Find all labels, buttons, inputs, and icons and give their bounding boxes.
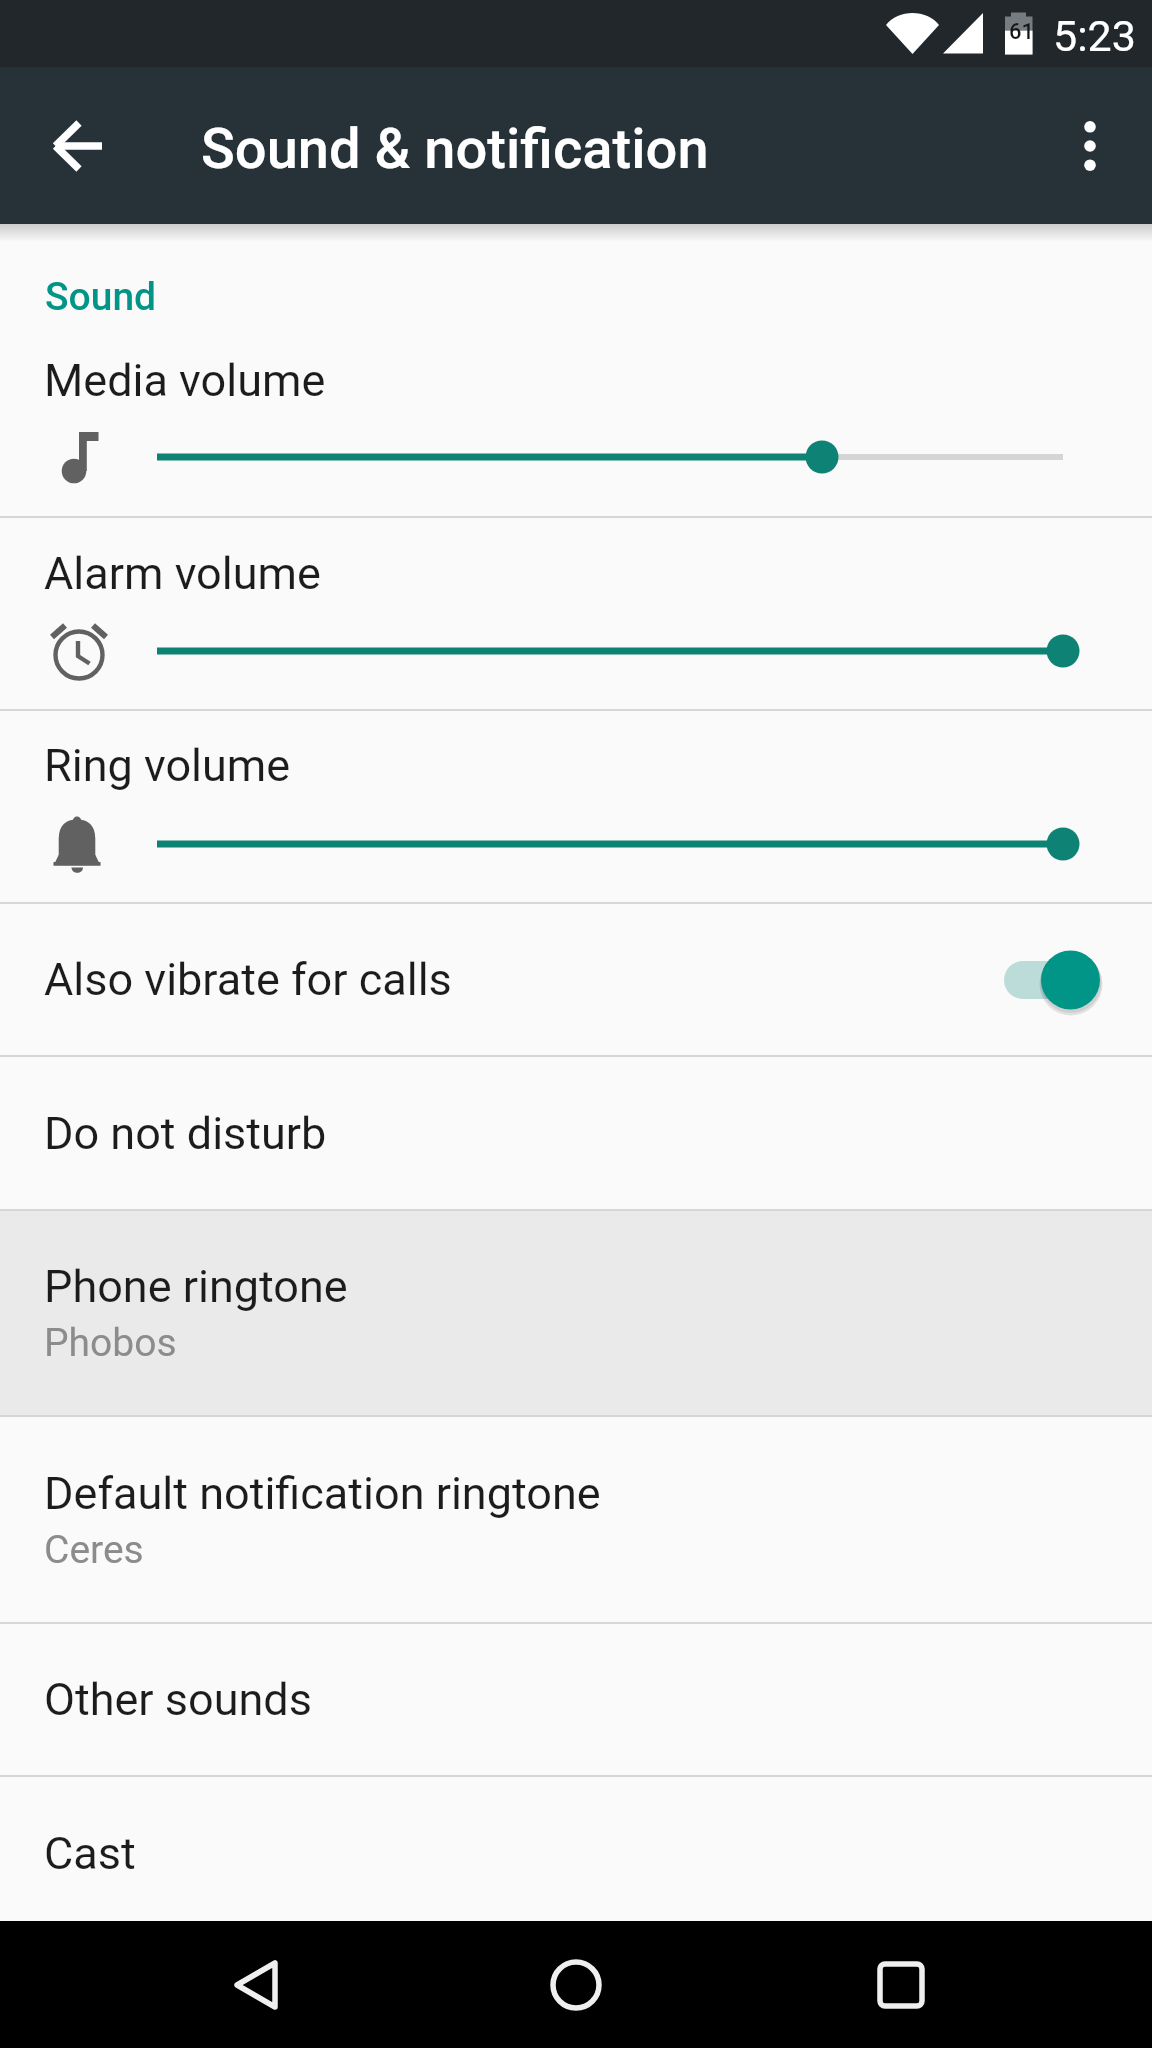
button[interactable]: Home	[511, 1921, 641, 2048]
button[interactable]: More options	[1038, 94, 1142, 198]
button[interactable]: Back	[191, 1921, 321, 2048]
staticText: Default notification ringtone	[44, 1467, 601, 1520]
staticText: Alarm volume	[44, 547, 321, 600]
staticText: Cast	[44, 1827, 136, 1880]
staticText: Do not disturb	[44, 1107, 327, 1160]
button[interactable]: Media volume	[0, 323, 1152, 516]
button[interactable]: Do not disturb	[0, 1057, 1152, 1209]
staticText: Ceres	[44, 1527, 144, 1573]
staticText: Sound & notification	[201, 116, 709, 182]
staticText: Also vibrate for calls	[44, 953, 452, 1006]
button[interactable]: Also vibrate for calls	[0, 904, 1152, 1055]
button[interactable]: Default notification ringtone	[0, 1417, 1152, 1622]
button[interactable]: Navigate up	[26, 94, 130, 198]
button[interactable]: Recent apps	[836, 1921, 966, 2048]
button[interactable]: Phone ringtone	[0, 1211, 1152, 1415]
button[interactable]: Cast	[0, 1777, 1152, 1921]
staticText: Sound	[45, 274, 157, 320]
button[interactable]: Ring volume	[0, 711, 1152, 902]
staticText: Phobos	[44, 1320, 177, 1366]
staticText: Phone ringtone	[44, 1260, 348, 1313]
staticText: 5:23	[1053, 11, 1136, 61]
staticText: Other sounds	[44, 1673, 312, 1726]
button[interactable]: Other sounds	[0, 1624, 1152, 1775]
staticText: Media volume	[44, 354, 326, 407]
button[interactable]: Alarm volume	[0, 518, 1152, 709]
staticText: Ring volume	[44, 739, 291, 792]
staticText: 61	[1009, 19, 1035, 45]
